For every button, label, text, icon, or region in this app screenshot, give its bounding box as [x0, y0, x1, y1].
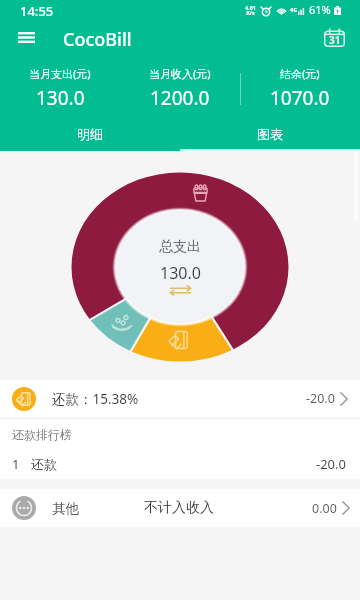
staticText: 结余(元): [280, 66, 320, 81]
staticText: 1070.0: [270, 85, 330, 111]
staticText: 明细: [77, 126, 103, 142]
button[interactable]: 1: [0, 449, 360, 479]
button[interactable]: 明细: [0, 117, 180, 151]
staticText: -20.0: [316, 455, 346, 473]
staticText: 31: [329, 33, 341, 47]
staticText: 130.0: [160, 262, 201, 284]
staticText: 1: [12, 455, 20, 473]
staticText: 4G: [290, 6, 298, 13]
staticText: 还款: [31, 456, 57, 472]
button[interactable]: 其他: [0, 489, 360, 527]
staticText: 还款排行榜: [12, 427, 72, 442]
staticText: 当月收入(元): [149, 66, 211, 81]
button[interactable]: Open navigation menu: [0, 22, 52, 60]
button[interactable]: Calendar: [312, 22, 360, 60]
staticText: 0.00: [312, 500, 337, 517]
staticText: 130.0: [36, 85, 85, 111]
staticText: 当月支出(元): [29, 66, 91, 81]
staticText: 图表: [257, 126, 283, 142]
staticText: 还款：15.38%: [52, 390, 139, 408]
staticText: 其他: [52, 500, 79, 517]
staticText: 1200.0: [150, 85, 210, 111]
staticText: 4.61 K/s: [245, 4, 256, 17]
button[interactable]: 图表: [180, 117, 360, 151]
button[interactable]: 还款：15.38%: [0, 380, 360, 417]
staticText: 61%: [309, 2, 331, 17]
staticText: 14:55: [20, 2, 54, 20]
staticText: CocoBill: [63, 27, 132, 52]
staticText: 总支出: [159, 238, 201, 256]
staticText: -20.0: [306, 390, 335, 407]
staticText: 不计入收入: [144, 499, 214, 517]
